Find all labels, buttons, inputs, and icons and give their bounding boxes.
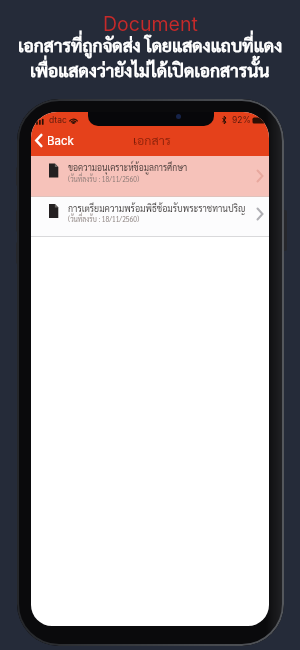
button[interactable]: Back	[33, 132, 81, 154]
staticText: (วันที่ลงรับ : 18/11/2560)	[68, 173, 139, 183]
staticText: Back	[47, 134, 74, 148]
button[interactable]	[31, 156, 269, 197]
staticText: dtac	[49, 115, 67, 125]
button[interactable]	[31, 197, 269, 236]
staticText: เอกสารที่ถูกจัดส่ง โดยแสดงแถบที่แดง	[18, 33, 283, 56]
staticText: 92%	[232, 115, 251, 125]
staticText: (วันที่ลงรับ : 18/11/2560)	[68, 213, 139, 223]
staticText: ขอความอนุเคราะห์ข้อมูลการศึกษา	[68, 160, 188, 173]
staticText: เอกสาร	[133, 132, 171, 148]
staticText: Document	[103, 12, 198, 36]
staticText: เพื่อแสดงว่ายังไม่ได้เปิดเอกสารนั้น	[30, 58, 270, 81]
staticText: การเตรียมความพร้อมพิธีซ้อมรับพระราชทานปร…	[68, 201, 246, 214]
